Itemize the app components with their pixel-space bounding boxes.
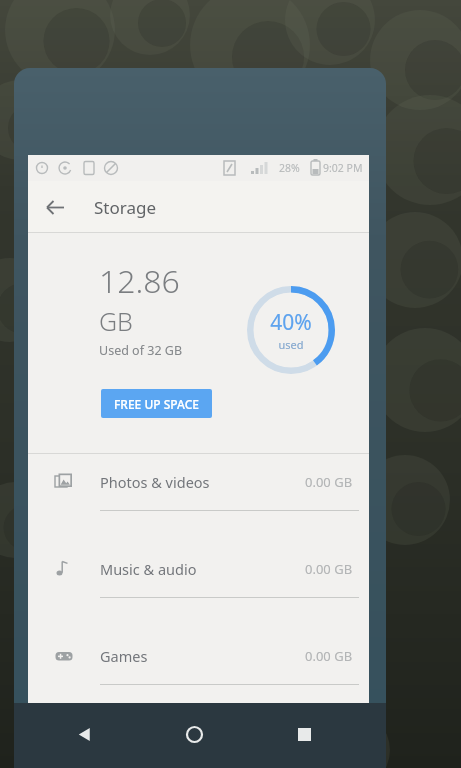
staticText: 0.00 GB [305, 473, 353, 491]
button[interactable]: Back [61, 711, 107, 757]
staticText: Games [100, 646, 148, 666]
button[interactable]: Home [171, 711, 217, 757]
staticText: 9:02 PM [323, 161, 363, 175]
button[interactable]: Recent apps [281, 711, 327, 757]
staticText: Music & audio [100, 559, 197, 579]
staticText: FREE UP SPACE [114, 396, 199, 412]
button[interactable]: Photos & videos [28, 454, 369, 541]
staticText: GB [99, 304, 133, 338]
staticText: 0.00 GB [305, 647, 353, 665]
button[interactable]: Back [38, 190, 72, 224]
staticText: 12.86 [99, 259, 180, 303]
staticText: Used of 32 GB [99, 342, 183, 359]
staticText: used [278, 337, 304, 352]
button[interactable]: Games [28, 628, 369, 703]
button[interactable]: Music & audio [28, 541, 369, 628]
staticText: Photos & videos [100, 472, 210, 492]
button[interactable]: FREE UP SPACE [101, 389, 212, 418]
staticText: 28% [279, 161, 300, 175]
staticText: 40% [270, 308, 312, 337]
staticText: Storage [94, 196, 157, 219]
staticText: 0.00 GB [305, 560, 353, 578]
